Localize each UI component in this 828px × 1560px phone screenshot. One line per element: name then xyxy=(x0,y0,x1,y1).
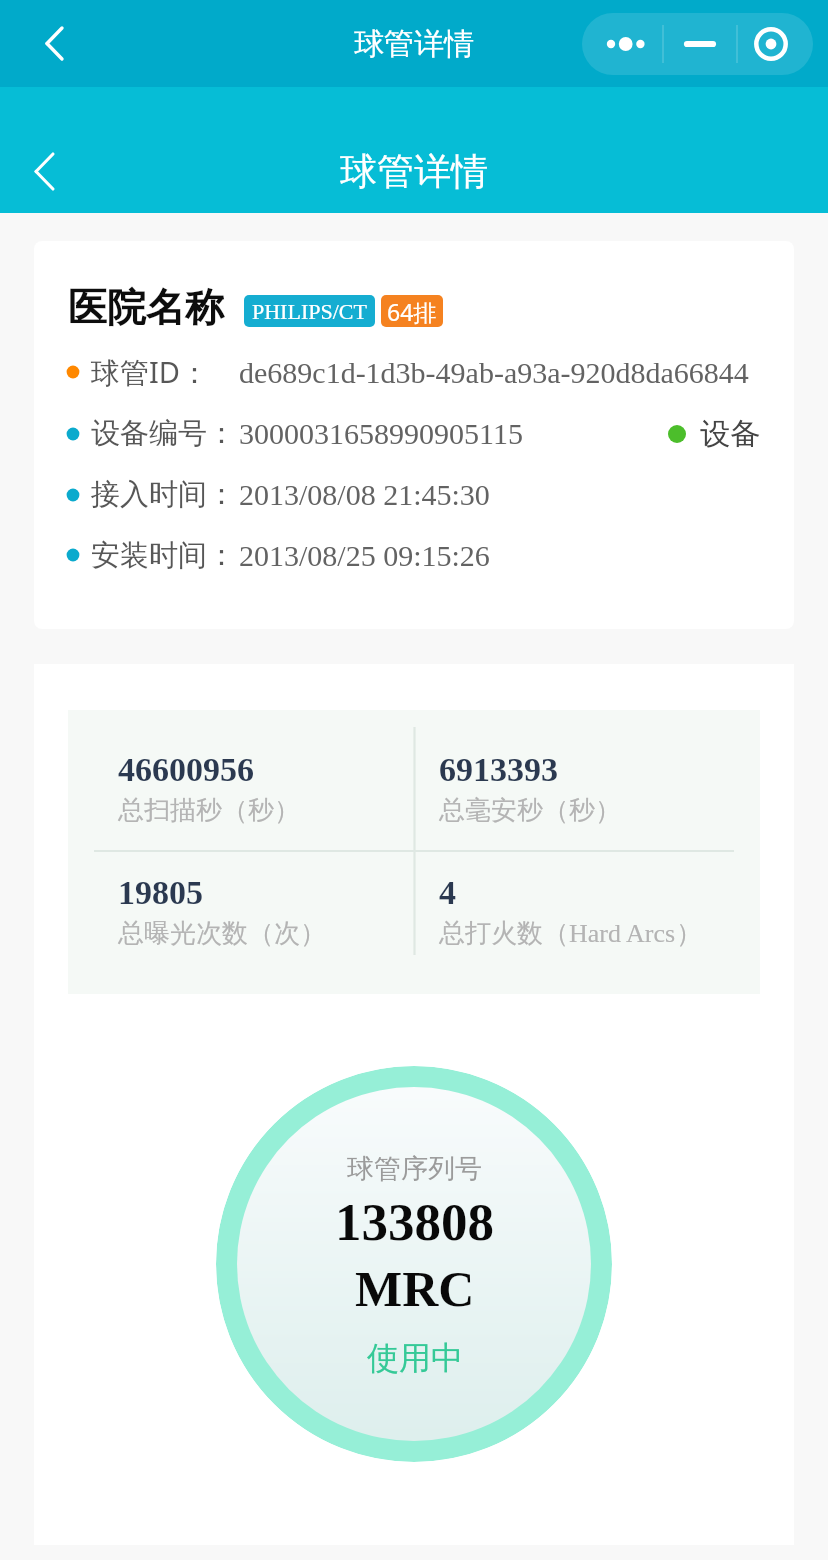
staticText: 球管ID： xyxy=(91,352,210,392)
staticText: 133808 xyxy=(335,1193,494,1252)
button[interactable]: 安装时间： xyxy=(34,525,794,585)
staticText: PHILIPS/CT xyxy=(252,299,367,323)
staticText: 2013/08/25 09:15:26 xyxy=(239,539,490,572)
staticText: 设备编号： xyxy=(91,415,236,452)
button[interactable]: PHILIPS/CT xyxy=(244,295,375,327)
staticText: 总毫安秒（秒） xyxy=(439,794,621,827)
button[interactable]: 球管序列号 xyxy=(216,1066,612,1462)
staticText: 64排 xyxy=(387,296,437,327)
staticText: 球管详情 xyxy=(354,25,474,63)
staticText: 2013/08/08 21:45:30 xyxy=(239,478,490,511)
staticText: 19805 xyxy=(118,874,203,912)
staticText: 46600956 xyxy=(118,751,254,789)
staticText: 总扫描秒（秒） xyxy=(118,794,300,827)
staticText: MRC xyxy=(355,1261,475,1316)
staticText: 球管序列号 xyxy=(347,1152,482,1186)
button[interactable]: 接入时间： xyxy=(34,464,794,525)
staticText: 6913393 xyxy=(439,751,558,789)
button[interactable]: Back xyxy=(13,140,75,202)
staticText: 使用中 xyxy=(367,1338,463,1378)
staticText: 3000031658990905115 xyxy=(239,417,523,450)
staticText: 4 xyxy=(439,874,456,912)
button[interactable]: More options xyxy=(582,13,813,75)
staticText: ） xyxy=(676,917,702,950)
staticText: 接入时间： xyxy=(91,476,236,513)
staticText: 总打火数（ xyxy=(439,917,569,950)
button[interactable]: 64排 xyxy=(381,295,443,327)
staticText: 球管详情 xyxy=(340,148,488,195)
staticText: 设备 xyxy=(700,415,760,453)
button[interactable]: 设备编号： xyxy=(34,403,794,464)
staticText: 安装时间： xyxy=(91,537,236,574)
staticText: 总曝光次数（次） xyxy=(118,917,326,950)
staticText: 医院名称 xyxy=(68,283,224,332)
button[interactable]: Back xyxy=(27,16,82,71)
staticText: Hard Arcs xyxy=(569,919,676,948)
staticText: de689c1d-1d3b-49ab-a93a-920d8da66844 xyxy=(239,356,749,389)
button[interactable]: 球管ID： xyxy=(34,341,794,403)
